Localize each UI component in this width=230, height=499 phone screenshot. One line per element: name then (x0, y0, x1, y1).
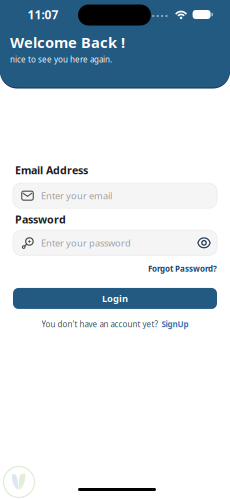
button[interactable]: SignUp (161, 319, 188, 330)
button[interactable]: Forgot Password? (148, 263, 217, 274)
button[interactable]: Login (13, 288, 217, 309)
staticText: Login (102, 292, 128, 305)
staticText: SignUp (161, 319, 188, 330)
staticText: nice to see you here again. (10, 54, 112, 65)
button[interactable]: Show password (197, 237, 217, 249)
staticText: Password (15, 212, 66, 226)
staticText: Forgot Password? (148, 263, 217, 274)
staticText: Email Address (15, 163, 88, 177)
staticText: Enter your email (41, 189, 112, 202)
staticText: Enter your password (41, 237, 131, 249)
staticText: 11:07 (27, 6, 58, 22)
staticText: You don't have an account yet? (41, 319, 157, 330)
staticText: Welcome Back ! (10, 32, 125, 52)
button[interactable]: Password (13, 230, 217, 255)
button[interactable]: Email Address (13, 183, 217, 208)
